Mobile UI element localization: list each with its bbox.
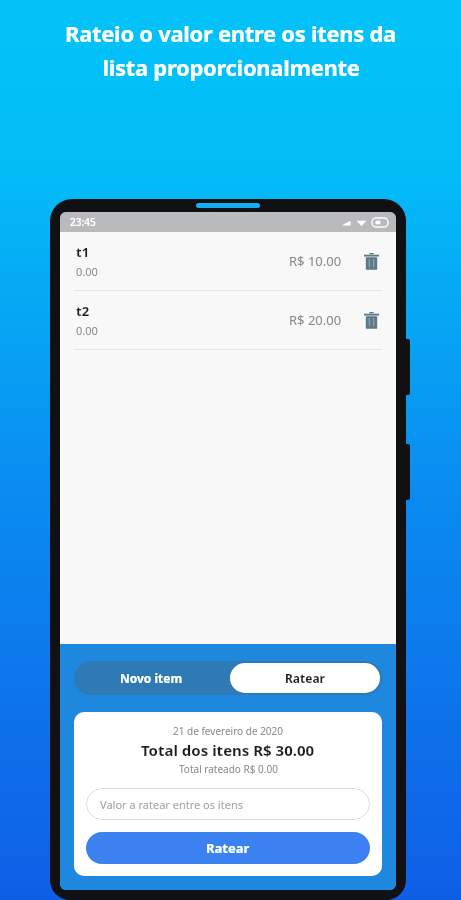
- staticText: lista proporcionalmente: [102, 52, 360, 82]
- staticText: 21 de fevereiro de 2020: [173, 724, 284, 738]
- staticText: t2: [76, 302, 90, 320]
- staticText: Total rateado R$ 0.00: [179, 762, 278, 776]
- staticText: 0.00: [76, 323, 98, 338]
- staticText: R$ 10.00: [289, 252, 342, 270]
- button[interactable]: Valor a ratear entre os itens: [86, 788, 370, 820]
- staticText: t1: [76, 243, 90, 261]
- button[interactable]: Excluir item: [356, 305, 386, 335]
- staticText: R$ 20.00: [289, 311, 342, 329]
- button[interactable]: Excluir item: [356, 246, 386, 276]
- button[interactable]: Novo item: [74, 661, 228, 695]
- staticText: Valor a ratear entre os itens: [100, 797, 243, 812]
- button[interactable]: Ratear: [86, 832, 370, 864]
- button[interactable]: t2: [60, 291, 396, 349]
- staticText: Ratear: [206, 839, 250, 857]
- staticText: Rateio o valor entre os itens da: [65, 18, 396, 48]
- staticText: 0.00: [76, 264, 98, 279]
- staticText: Ratear: [285, 670, 325, 686]
- staticText: 23:45: [70, 215, 96, 229]
- button[interactable]: t1: [60, 232, 396, 290]
- button[interactable]: Ratear: [230, 663, 380, 693]
- staticText: Novo item: [120, 670, 183, 686]
- staticText: Total dos itens R$ 30.00: [141, 740, 315, 760]
